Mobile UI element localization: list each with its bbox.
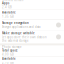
staticText: Encrypt applications and data <box>2 25 40 29</box>
staticText: Available <box>2 11 16 14</box>
staticText: Total space <box>2 49 18 52</box>
button[interactable]: Make storage writable <box>0 30 64 43</box>
staticText: Apps <box>2 1 9 5</box>
button[interactable]: Available <box>0 57 64 64</box>
staticText: Make storage writable <box>2 31 35 35</box>
staticText: Available <box>2 57 16 60</box>
staticText: 2.4 GB <box>2 5 12 9</box>
button[interactable]: Apps <box>0 1 64 9</box>
staticText: 1.35 GB <box>2 15 14 18</box>
button[interactable]: Total space <box>0 48 64 56</box>
staticText: Internal storage <box>2 0 24 3</box>
button[interactable]: Available <box>0 10 64 20</box>
staticText: Photo storage <box>2 45 22 49</box>
button[interactable]: Storage encryption <box>0 20 64 30</box>
staticText: Storage encryption <box>2 21 29 25</box>
staticText: 2.10 GB <box>2 61 14 64</box>
staticText: Let apps store their own data on the ext… <box>2 35 47 42</box>
staticText: 4.00 GB <box>2 53 14 56</box>
